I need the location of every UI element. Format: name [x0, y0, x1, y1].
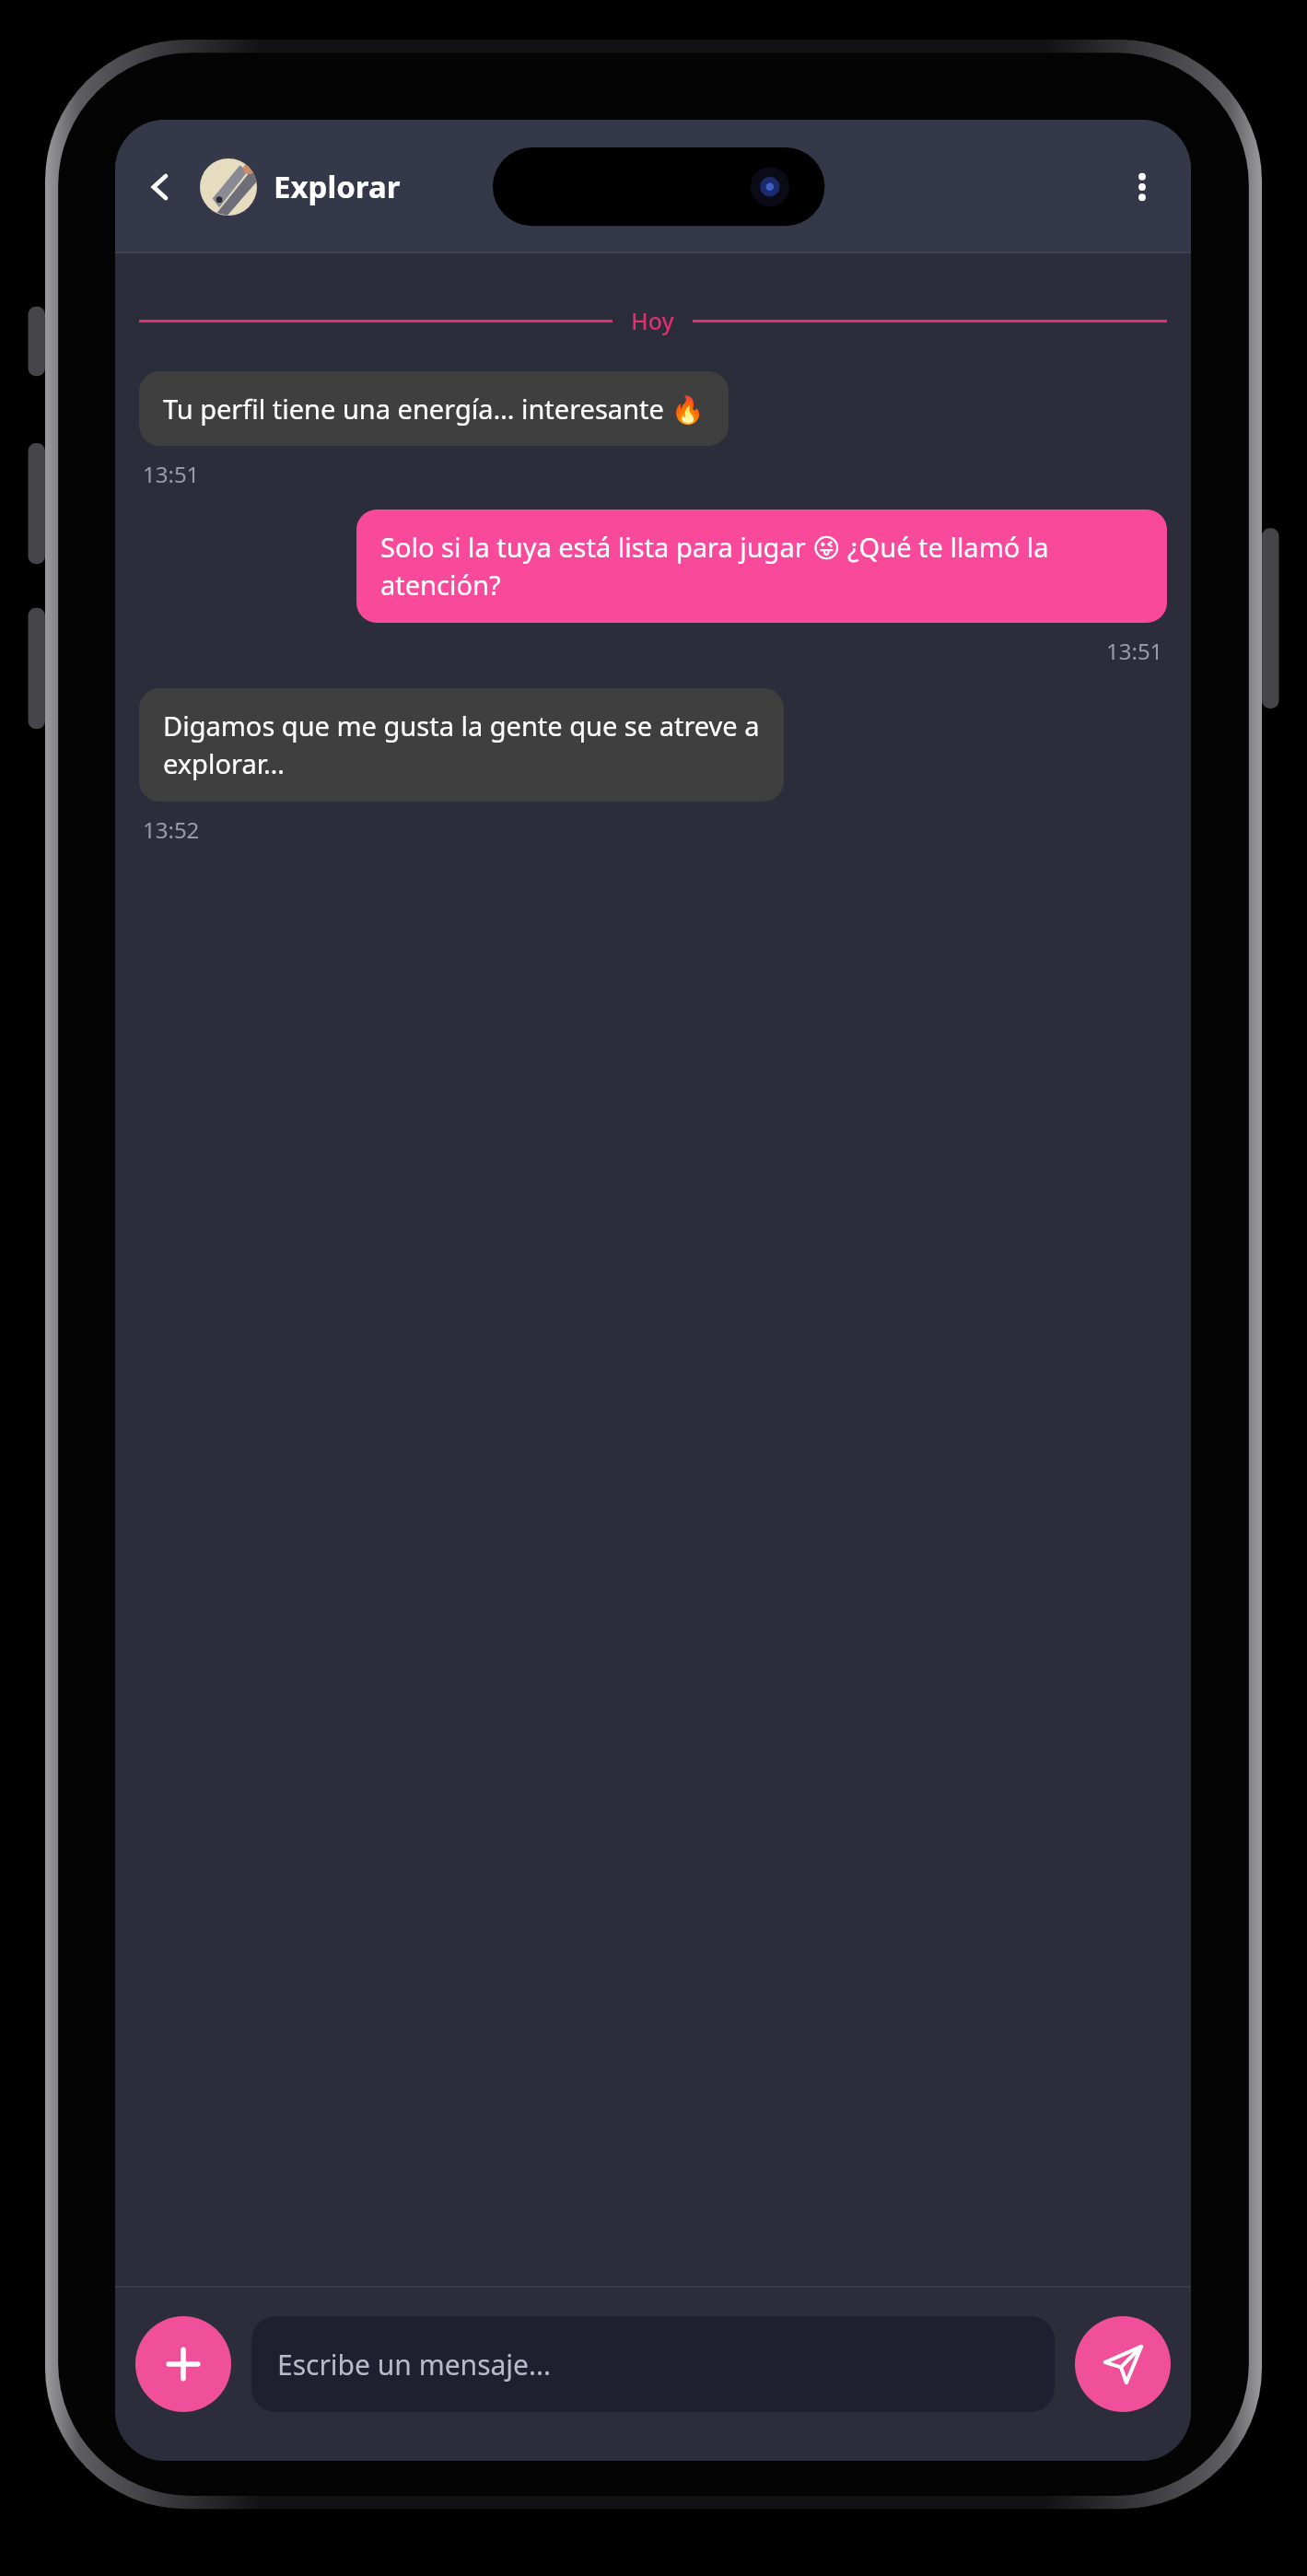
button[interactable]: Solo si la tuya está lista para jugar 😜 … — [356, 509, 1167, 623]
button[interactable]: Escribe un mensaje... — [251, 2316, 1055, 2412]
staticText: Tu perfil tiene una energía… interesante… — [163, 391, 705, 427]
staticText: Explorar — [274, 166, 401, 207]
button[interactable]: Tu perfil tiene una energía… interesante… — [139, 371, 729, 446]
button[interactable]: Digamos que me gusta la gente que se atr… — [139, 688, 784, 802]
staticText: Escribe un mensaje... — [277, 2346, 552, 2383]
staticText: 13:51 — [1106, 636, 1163, 666]
button[interactable]: Profile photo — [200, 158, 257, 216]
button[interactable]: Back — [132, 158, 189, 216]
button[interactable]: Explorar — [274, 120, 1114, 253]
button[interactable]: Send — [1075, 2316, 1171, 2412]
button[interactable]: Add attachment — [135, 2316, 231, 2412]
staticText: 13:51 — [143, 459, 200, 489]
button[interactable]: More options — [1114, 158, 1171, 216]
staticText: 13:52 — [143, 814, 200, 845]
staticText: Hoy — [631, 305, 674, 336]
staticText: Solo si la tuya está lista para jugar 😜 … — [380, 529, 1143, 603]
staticText: Digamos que me gusta la gente que se atr… — [163, 708, 760, 782]
